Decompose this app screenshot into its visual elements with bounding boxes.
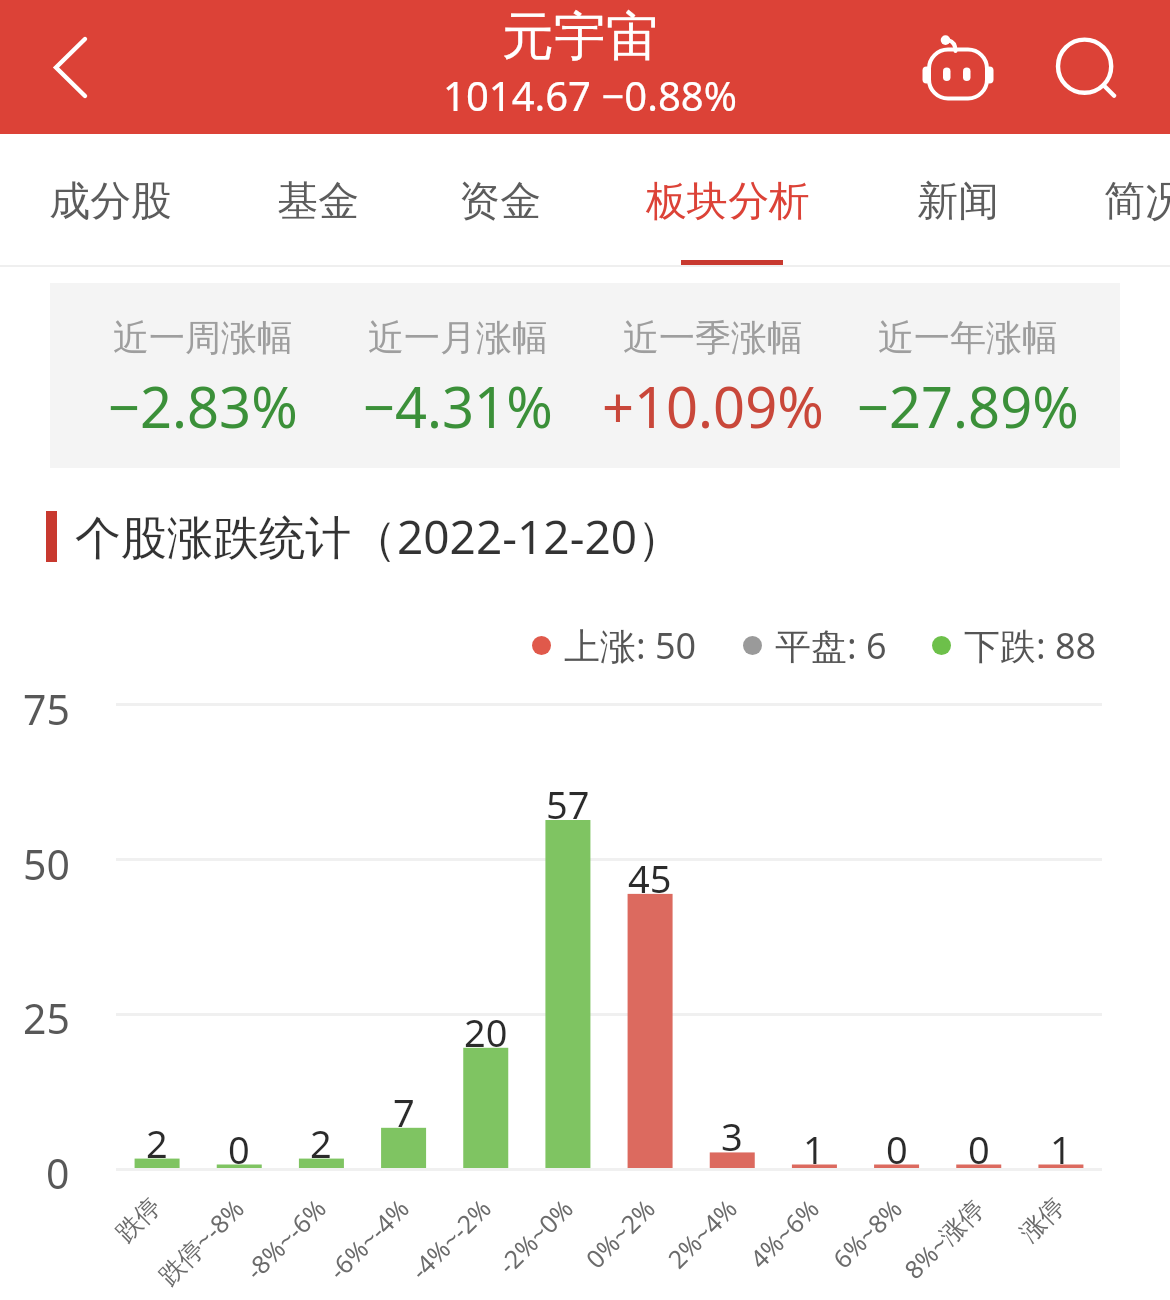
staticText: −2.83% <box>108 368 298 444</box>
staticText: 近一年涨幅 <box>878 315 1058 360</box>
staticText: 2 <box>310 1117 332 1161</box>
staticText: 近一月涨幅 <box>368 315 548 360</box>
button[interactable]: Back <box>0 0 140 134</box>
staticText: 涨停 <box>1014 1191 1071 1248</box>
button[interactable]: 简况 <box>1054 134 1170 265</box>
staticText: 下跌: 88 <box>964 621 1097 670</box>
staticText: 成分股 <box>49 176 172 228</box>
staticText: 近一周涨幅 <box>113 315 293 360</box>
staticText: 板块分析 <box>646 176 810 228</box>
staticText: +10.09% <box>602 368 824 444</box>
staticText: 1 <box>803 1123 825 1167</box>
staticText: 6%~8% <box>825 1191 909 1275</box>
staticText: -8%~-6% <box>238 1191 333 1286</box>
staticText: 简况 <box>1104 176 1170 228</box>
button[interactable]: Search <box>1035 0 1135 134</box>
staticText: 近一季涨幅 <box>623 315 803 360</box>
staticText: 个股涨跌统计（2022-12-20） <box>75 505 684 568</box>
staticText: 1 <box>1050 1123 1072 1167</box>
staticText: 0 <box>228 1123 250 1167</box>
staticText: 57 <box>546 778 590 822</box>
staticText: 2%~4% <box>660 1191 744 1275</box>
button[interactable]: 板块分析 <box>596 134 860 265</box>
staticText: 7 <box>393 1086 415 1130</box>
staticText: 8%~涨停 <box>896 1191 991 1286</box>
staticText: 4%~6% <box>742 1191 826 1275</box>
staticText: 3 <box>721 1110 743 1154</box>
staticText: 50 <box>23 836 70 886</box>
staticText: 上涨: 50 <box>564 621 697 670</box>
staticText: 45 <box>628 852 672 896</box>
staticText: -2%~0% <box>490 1191 580 1281</box>
button[interactable]: AI assistant <box>907 0 1007 134</box>
staticText: -6%~-4% <box>321 1191 416 1286</box>
staticText: 0 <box>968 1123 990 1167</box>
button[interactable]: 下跌: 88 <box>932 621 1097 670</box>
staticText: 25 <box>23 990 70 1040</box>
staticText: 元宇宙 <box>502 4 658 70</box>
staticText: 平盘: 6 <box>775 621 887 670</box>
staticText: 跌停 <box>110 1191 167 1248</box>
staticText: 0 <box>46 1145 70 1195</box>
staticText: 75 <box>23 681 70 731</box>
staticText: 基金 <box>277 176 359 228</box>
button[interactable]: 新闻 <box>867 134 1049 265</box>
staticText: 2 <box>146 1117 168 1161</box>
staticText: 跌停~-8% <box>151 1191 251 1291</box>
button[interactable]: 平盘: 6 <box>743 621 887 670</box>
staticText: −27.89% <box>857 368 1079 444</box>
staticText: −4.31% <box>363 368 553 444</box>
button[interactable]: 上涨: 50 <box>532 621 697 670</box>
staticText: 新闻 <box>917 176 999 228</box>
staticText: 资金 <box>459 176 541 228</box>
button[interactable]: 基金 <box>227 134 409 265</box>
staticText: 0 <box>886 1123 908 1167</box>
staticText: -4%~-2% <box>403 1191 498 1286</box>
staticText: 1014.67 −0.88% <box>443 68 737 122</box>
button[interactable]: 成分股 <box>0 134 222 265</box>
button[interactable]: 资金 <box>409 134 591 265</box>
staticText: 20 <box>464 1006 508 1050</box>
staticText: 0%~2% <box>578 1191 662 1275</box>
